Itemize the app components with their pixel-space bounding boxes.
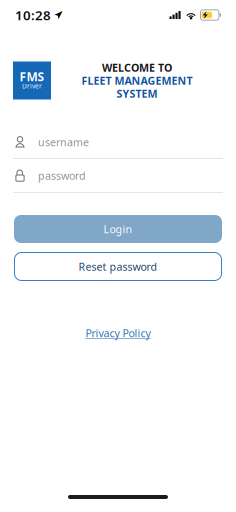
button[interactable]: Privacy Policy [85, 325, 150, 341]
button[interactable]: Login [14, 215, 222, 243]
staticText: password [38, 168, 86, 183]
button[interactable]: Reset password [14, 252, 222, 281]
staticText: Login [103, 222, 132, 236]
staticText: 10:28 [15, 6, 51, 24]
staticText: FMS [19, 68, 44, 84]
staticText: Privacy Policy [85, 326, 150, 340]
staticText: Reset password [78, 259, 157, 274]
staticText: SYSTEM [116, 86, 157, 101]
staticText: FLEET MANAGEMENT [81, 73, 192, 88]
staticText: Driver [22, 82, 42, 90]
staticText: username [38, 135, 89, 149]
staticText: WELCOME TO [102, 60, 172, 75]
